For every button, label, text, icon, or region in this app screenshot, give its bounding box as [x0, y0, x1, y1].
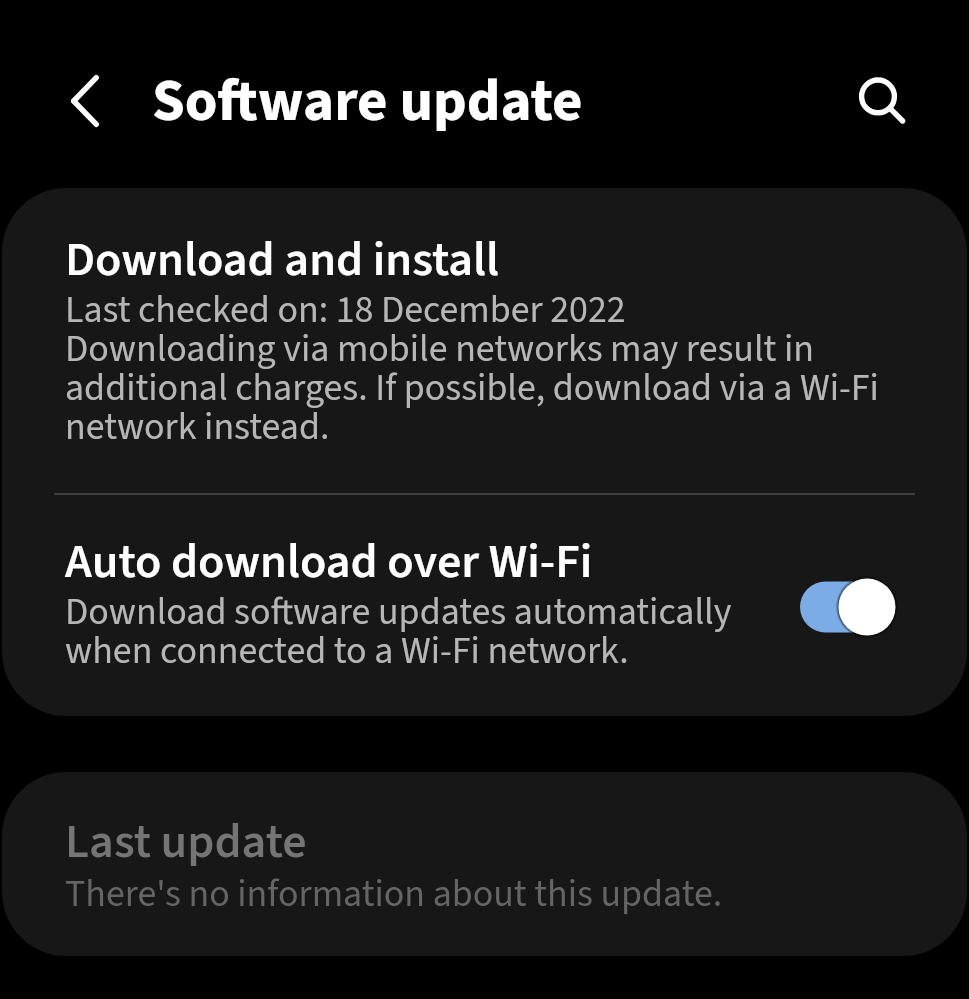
- button[interactable]: Navigate up: [39, 44, 131, 136]
- staticText: Last update: [65, 819, 307, 872]
- button[interactable]: Last update: [2, 772, 967, 956]
- staticText: Download software updates automatically …: [65, 596, 782, 674]
- staticText: There's no information about this update…: [65, 878, 723, 917]
- staticText: Auto download over Wi-Fi: [65, 539, 593, 592]
- staticText: Download and install: [65, 237, 500, 290]
- button[interactable]: Auto download over Wi-Fi: [2, 495, 967, 716]
- button[interactable]: Auto download over Wi-Fi, on: [798, 575, 896, 639]
- staticText: Software update: [152, 60, 583, 144]
- staticText: Last checked on: 18 December 2022 Downlo…: [65, 294, 905, 450]
- button[interactable]: Search: [825, 36, 933, 144]
- button[interactable]: Download and install: [2, 188, 967, 493]
